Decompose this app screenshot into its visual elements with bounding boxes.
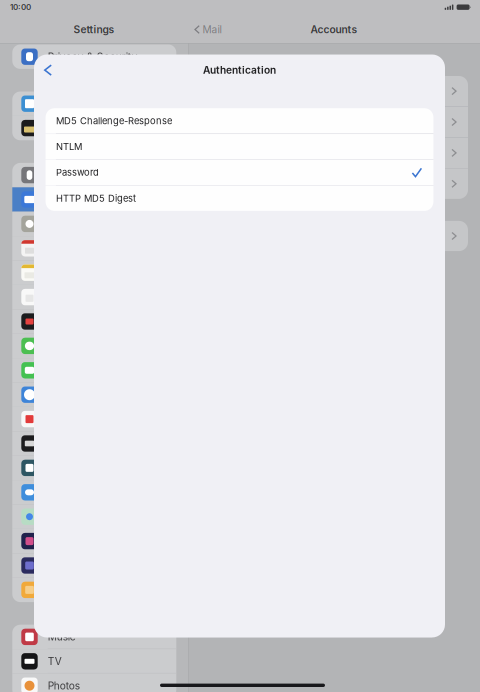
button[interactable]: Maps	[12, 504, 176, 529]
button[interactable]: Messages	[12, 334, 176, 358]
staticText: HTTP MD5 Digest	[56, 193, 136, 204]
button[interactable]: Mail	[188, 17, 222, 42]
button[interactable]: TV	[12, 649, 176, 673]
button[interactable]: Settings	[0, 16, 188, 43]
staticText: Privacy & Security	[48, 51, 138, 63]
button[interactable]: Back	[36, 57, 60, 83]
button[interactable]: MD5 Challenge-Response	[46, 108, 433, 133]
button[interactable]: Reminders	[12, 285, 176, 309]
button[interactable]: Safari	[12, 382, 176, 407]
staticText: 10:00	[10, 2, 31, 12]
button[interactable]: Passwords	[12, 163, 176, 187]
button[interactable]: App Store	[12, 91, 176, 116]
staticText: Accounts	[310, 23, 357, 36]
button[interactable]: Privacy & Security	[12, 44, 176, 69]
button[interactable]: Contacts	[12, 212, 176, 236]
staticText: Settings	[73, 23, 114, 36]
staticText: Music	[48, 631, 76, 643]
button[interactable]: NTLM	[46, 134, 433, 159]
button[interactable]: Freeform	[12, 529, 176, 553]
staticText: Wallet	[48, 122, 76, 134]
button[interactable]: Mail	[12, 187, 176, 212]
staticText: Passwords	[48, 169, 99, 181]
button[interactable]: Password	[46, 160, 433, 185]
button[interactable]: Notes	[12, 260, 176, 285]
button[interactable]: Calendar	[12, 236, 176, 260]
button[interactable]: News	[12, 407, 176, 431]
button[interactable]: HTTP MD5 Digest	[46, 186, 433, 211]
staticText: Password	[56, 167, 99, 178]
button[interactable]: Wallet	[12, 116, 176, 140]
button[interactable]: Translate	[12, 456, 176, 480]
button[interactable]: Weather	[12, 480, 176, 504]
staticText: NTLM	[56, 141, 82, 152]
staticText: Mail	[48, 193, 67, 206]
staticText: MD5 Challenge-Response	[56, 115, 172, 126]
staticText: Mail	[203, 23, 222, 36]
staticText: TV	[48, 655, 62, 667]
button[interactable]: FaceTime	[12, 358, 176, 382]
button[interactable]: Voice Memos	[12, 309, 176, 334]
button[interactable]: Shortcuts	[12, 553, 176, 578]
button[interactable]: Home	[12, 578, 176, 602]
button[interactable]: Photos	[12, 673, 176, 692]
button[interactable]: Stocks	[12, 431, 176, 456]
staticText: Authentication	[203, 64, 276, 76]
staticText: App Store	[48, 98, 96, 110]
button[interactable]: Music	[12, 625, 176, 649]
staticText: Photos	[48, 680, 80, 692]
